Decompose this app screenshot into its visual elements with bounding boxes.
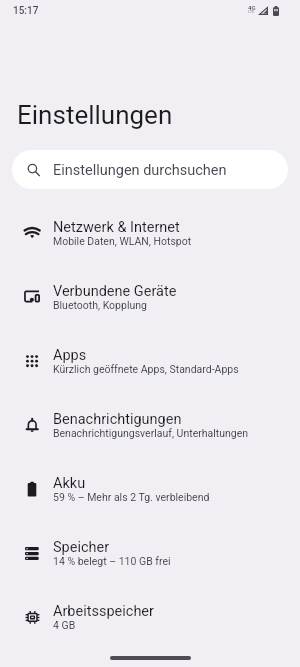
staticText: 59 % – Mehr als 2 Tg. verbleibend [53, 491, 210, 503]
staticText: Apps [53, 347, 87, 364]
staticText: Arbeitsspeicher [53, 603, 154, 620]
staticText: Speicher [53, 539, 110, 556]
button[interactable]: Einstellungen durchsuchen [12, 150, 288, 189]
button[interactable]: Speicher [0, 521, 300, 585]
button[interactable]: Akku [0, 457, 300, 521]
staticText: Einstellungen durchsuchen [53, 162, 227, 179]
staticText: Akku [53, 475, 86, 492]
staticText: Netzwerk & Internet [53, 219, 180, 236]
button[interactable]: Netzwerk & Internet [0, 201, 300, 265]
button[interactable]: Verbundene Geräte [0, 265, 300, 329]
staticText: 14 % belegt – 110 GB frei [53, 555, 171, 567]
staticText: LTE [248, 9, 255, 14]
staticText: Benachrichtigungen [53, 411, 182, 428]
staticText: Benachrichtigungsverlauf, Unterhaltungen [53, 427, 249, 439]
button[interactable]: Apps [0, 329, 300, 393]
staticText: Einstellungen [17, 100, 173, 130]
staticText: 4 GB [53, 619, 76, 631]
staticText: 4G [248, 4, 256, 11]
staticText: 15:17 [13, 5, 39, 17]
staticText: Bluetooth, Kopplung [53, 299, 147, 311]
staticText: Kürzlich geöffnete Apps, Standard-Apps [53, 363, 239, 375]
button[interactable]: Arbeitsspeicher [0, 585, 300, 649]
button[interactable]: Benachrichtigungen [0, 393, 300, 457]
staticText: Mobile Daten, WLAN, Hotspot [53, 235, 192, 247]
staticText: Verbundene Geräte [53, 283, 177, 300]
